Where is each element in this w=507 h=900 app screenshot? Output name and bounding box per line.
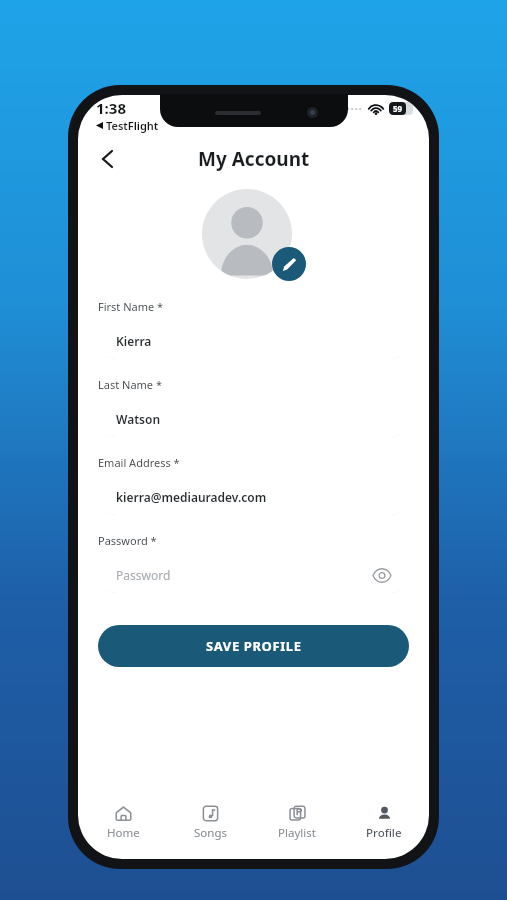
staticText: Profile [366,825,402,841]
button[interactable]: SAVE PROFILE [98,625,409,667]
staticText: My Account [198,146,310,172]
staticText: Songs [194,825,227,841]
staticText: SAVE PROFILE [206,637,302,655]
staticText: 1:38 [96,98,126,118]
staticText: Playlist [278,825,316,841]
staticText: Last Name * [98,377,162,392]
staticText: TestFlight [106,118,159,133]
staticText: kierra@mediauradev.com [116,489,267,505]
button[interactable]: Password [98,556,409,593]
staticText: First Name * [98,299,164,314]
button[interactable]: Playlist [255,803,339,843]
staticText: Password * [98,533,157,548]
button[interactable]: Kierra [98,322,409,359]
staticText: 59 [393,103,403,114]
staticText: Watson [116,411,161,427]
button[interactable]: Home [81,803,165,843]
staticText: Home [107,825,140,841]
button[interactable]: Songs [168,803,252,843]
button[interactable]: Back [88,140,126,178]
button[interactable]: Profile [342,803,426,843]
button[interactable]: kierra@mediauradev.com [98,478,409,515]
staticText: Email Address * [98,455,180,470]
button[interactable]: Edit photo [272,247,306,281]
button[interactable]: Watson [98,400,409,437]
staticText: Kierra [116,333,152,349]
staticText: Password [116,567,171,583]
button[interactable]: Show password [369,562,395,588]
